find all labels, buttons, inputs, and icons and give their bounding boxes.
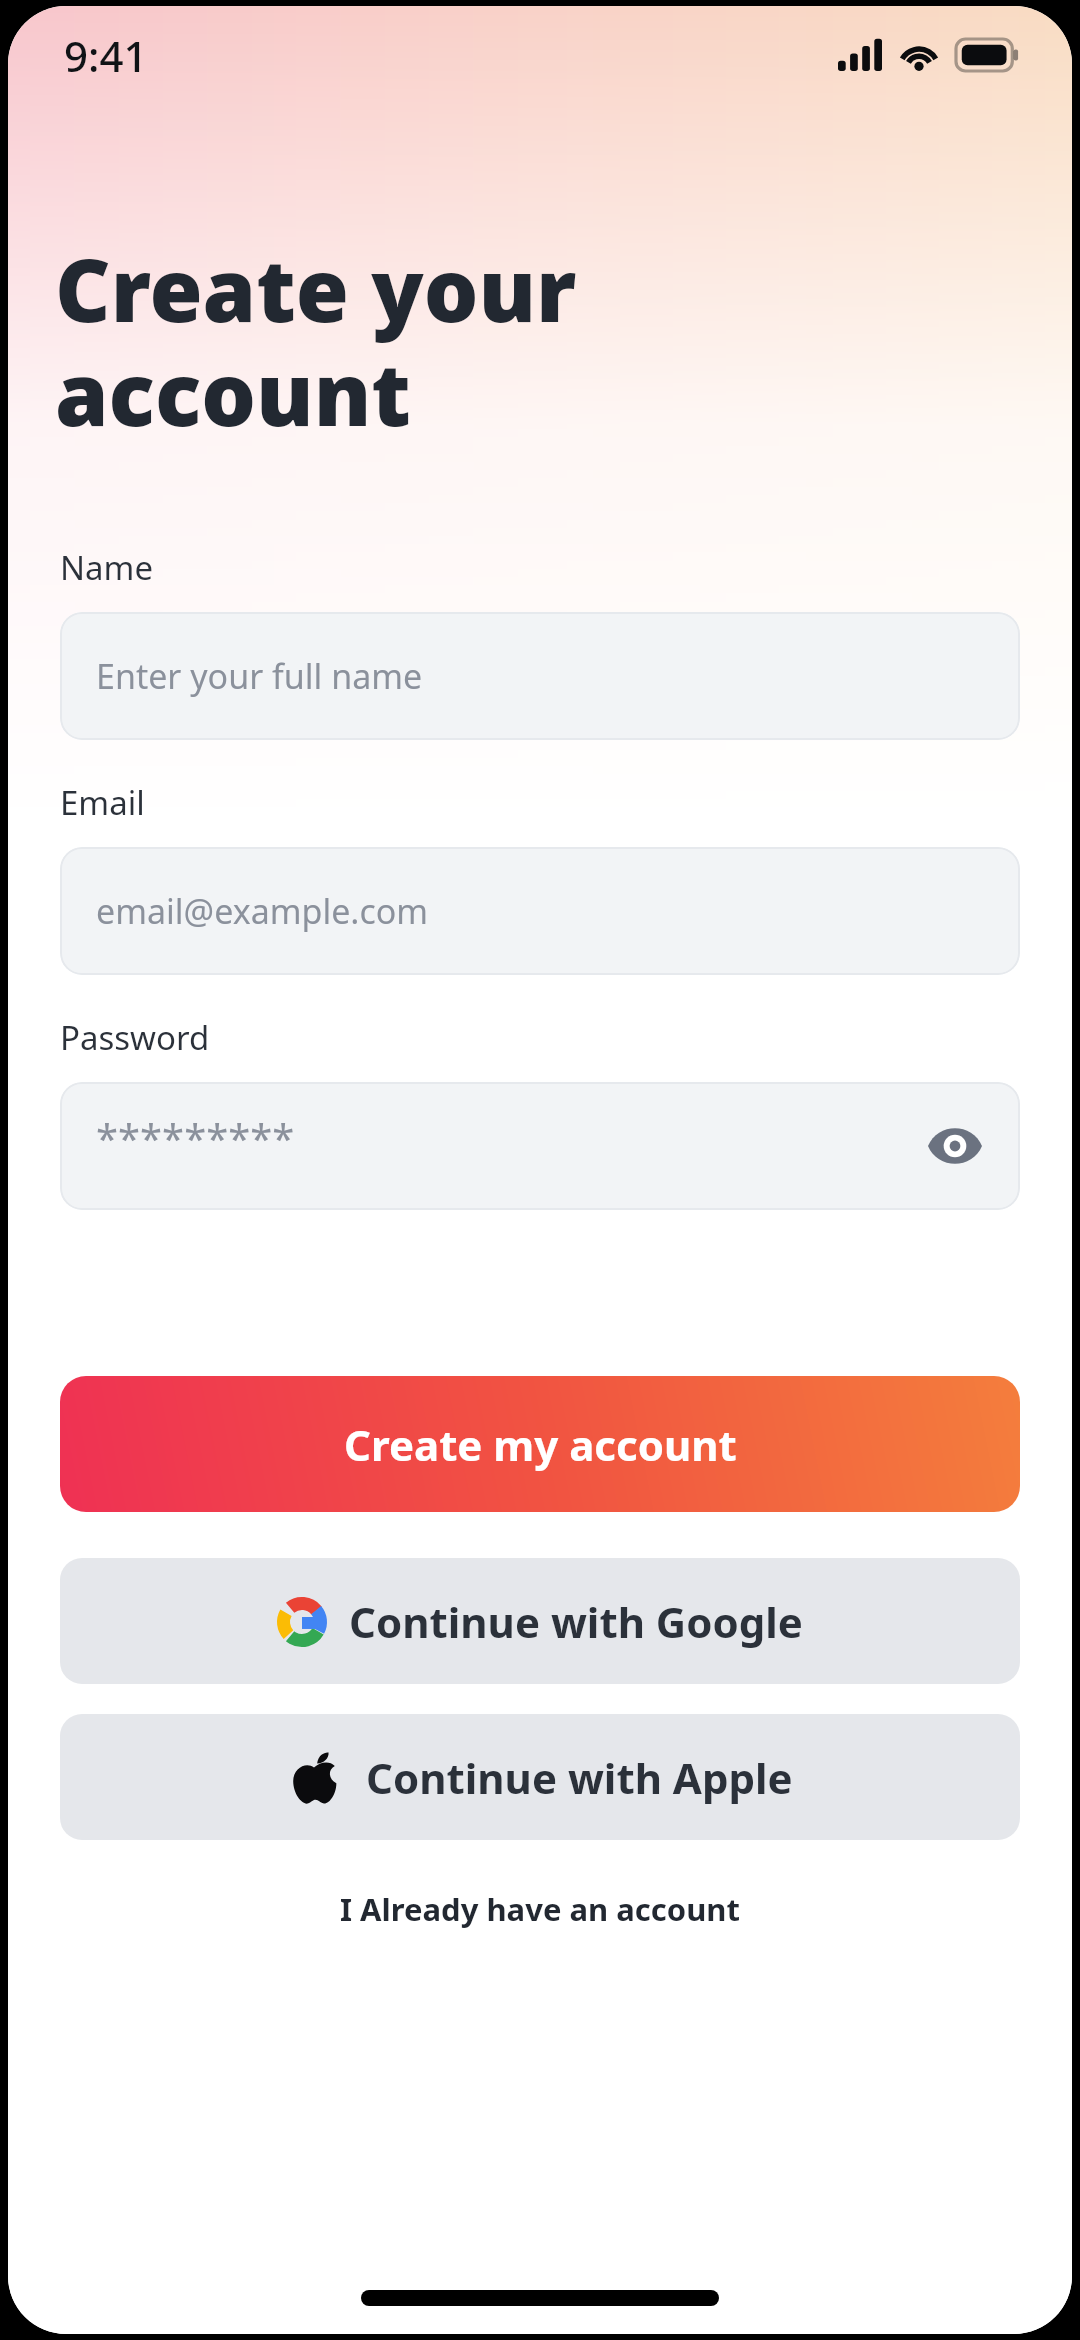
button[interactable]: Continue with Google bbox=[60, 1558, 1020, 1684]
button[interactable]: Create my account bbox=[60, 1376, 1020, 1512]
staticText: ********* bbox=[96, 1110, 295, 1164]
staticText: Create my account bbox=[344, 1416, 737, 1473]
button[interactable]: email@example.com bbox=[60, 847, 1020, 975]
staticText: I Already have an account bbox=[340, 1888, 740, 1930]
staticText: Continue with Google bbox=[349, 1593, 803, 1650]
button[interactable]: Show password bbox=[920, 1111, 990, 1181]
staticText: Enter your full name bbox=[96, 653, 423, 699]
staticText: Password bbox=[60, 1015, 210, 1060]
staticText: Email bbox=[60, 780, 145, 825]
staticText: 9:41 bbox=[64, 27, 148, 84]
button[interactable]: ********* bbox=[60, 1082, 1020, 1210]
button[interactable]: Continue with Apple bbox=[60, 1714, 1020, 1840]
staticText: email@example.com bbox=[96, 888, 429, 934]
button[interactable]: I Already have an account bbox=[8, 1888, 1072, 1930]
staticText: Create your account bbox=[55, 230, 577, 451]
staticText: Continue with Apple bbox=[366, 1749, 793, 1806]
staticText: Name bbox=[60, 545, 154, 590]
button[interactable]: Enter your full name bbox=[60, 612, 1020, 740]
